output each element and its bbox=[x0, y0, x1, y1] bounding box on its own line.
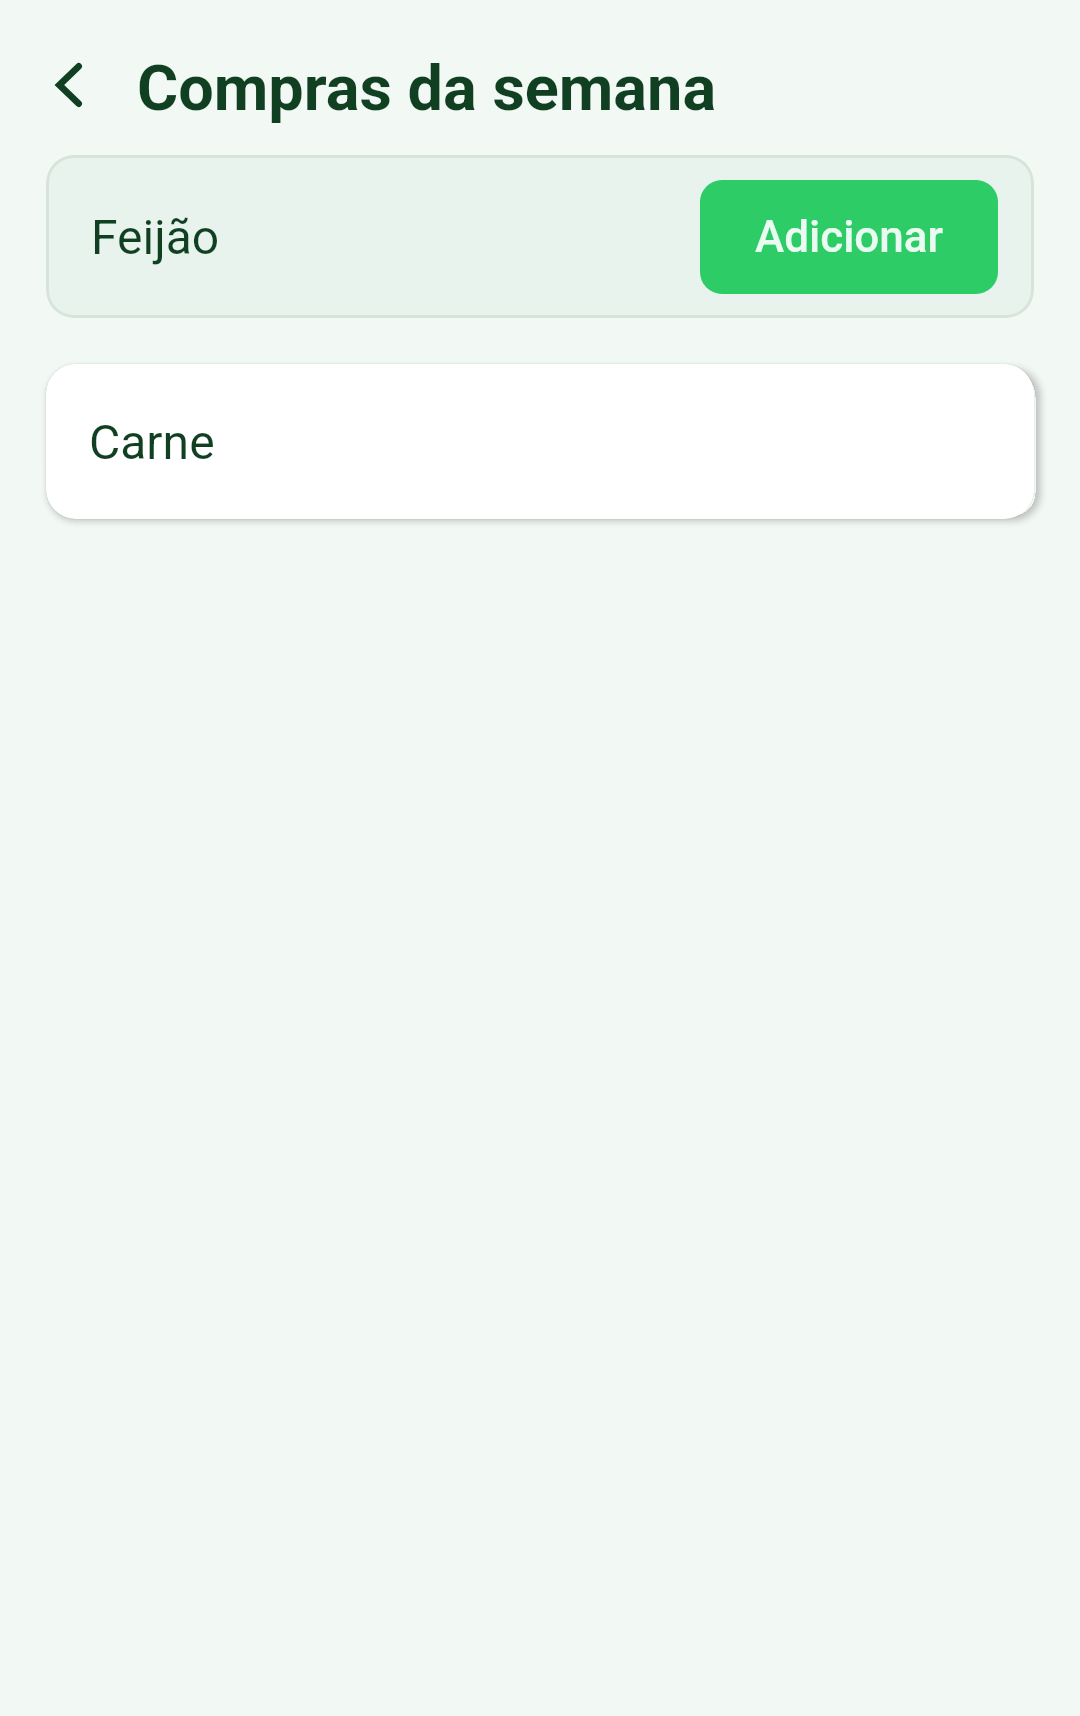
staticText: Compras da semana bbox=[137, 52, 717, 126]
button[interactable]: Back bbox=[45, 41, 93, 129]
button[interactable]: Feijão bbox=[46, 155, 700, 318]
staticText: Carne bbox=[89, 414, 215, 470]
button[interactable]: Adicionar bbox=[700, 180, 998, 294]
staticText: Feijão bbox=[91, 209, 220, 265]
staticText: Adicionar bbox=[755, 211, 944, 263]
button[interactable]: Carne bbox=[46, 364, 1034, 519]
